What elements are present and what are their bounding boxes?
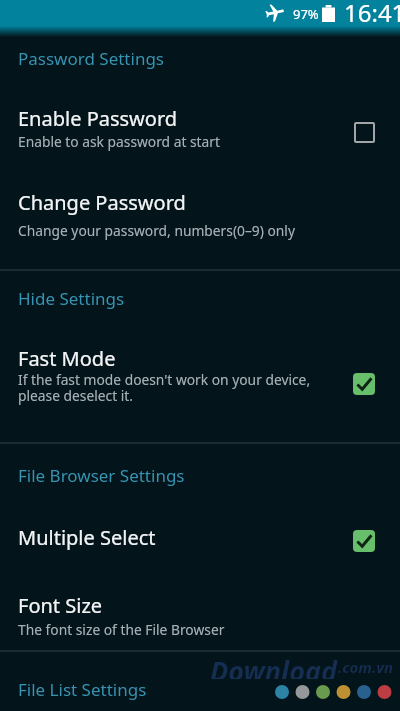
button[interactable]: Enable Password [0,98,400,156]
staticText: 97% [293,5,319,23]
staticText: Password Settings [18,47,164,70]
button[interactable]: Fast Mode [0,340,400,416]
staticText: Change your password, numbers(0–9) only [18,221,295,240]
staticText: Download [210,652,338,679]
staticText: Enable to ask password at start [18,132,221,151]
button[interactable]: Change Password [0,186,400,244]
staticText: File Browser Settings [18,464,185,487]
staticText: Change Password [18,189,186,216]
staticText: .com.vn [338,657,393,677]
staticText: Fast Mode [18,345,116,372]
staticText: Font Size [18,592,103,619]
staticText: Enable Password [18,105,178,132]
staticText: 16:41 [344,0,400,26]
staticText: Multiple Select [18,524,156,551]
button[interactable]: Multiple Select [0,516,400,564]
staticText: File List Settings [18,678,147,701]
staticText: If the fast mode doesn't work on your de… [18,370,311,405]
staticText: The font size of the File Browser [18,620,225,639]
staticText: Hide Settings [18,287,125,310]
button[interactable]: Font Size [0,586,400,644]
